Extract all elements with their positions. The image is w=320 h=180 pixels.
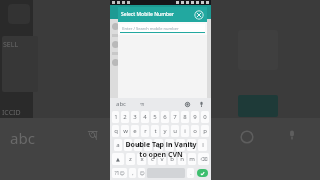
button[interactable]: j [176,139,185,151]
button[interactable]: x [137,153,146,165]
button[interactable]: g [154,139,163,151]
staticText: Enter / Search mobile number [122,26,179,31]
staticText: o [193,127,197,135]
staticText: i [184,127,186,135]
button[interactable]: a [114,139,122,151]
staticText: k [190,141,194,149]
button[interactable]: 6 [161,111,169,123]
button[interactable]: Enter / Search mobile number [120,24,205,33]
button[interactable]: l [198,139,207,151]
button[interactable]: s [124,139,132,151]
staticText: Select Mobile Number [121,11,174,18]
button[interactable]: 2 [121,111,129,123]
button[interactable]: h [165,139,174,151]
staticText: to open CVN [139,150,183,160]
staticText: c [151,155,154,163]
staticText: j [180,141,182,149]
staticText: ICCID [2,108,21,118]
button[interactable]: Settings [184,101,191,108]
staticText: 5 [153,113,157,121]
staticText: SELL [3,40,19,50]
button[interactable]: k [187,139,196,151]
staticText: f [147,141,150,149]
button[interactable]: 7 [171,111,179,123]
button[interactable]: Emoji [138,168,145,178]
button[interactable]: Symbols [112,168,127,178]
button[interactable]: 9 [191,111,199,123]
staticText: r [144,127,147,135]
staticText: 7 [173,113,177,121]
button[interactable]: i [181,125,189,137]
button[interactable]: 3 [131,111,139,123]
staticText: x [140,155,144,163]
staticText: w [123,127,128,135]
staticText: u [173,127,177,135]
staticText: 6 [163,113,167,121]
button[interactable]: Enter [197,169,208,177]
staticText: ☺ [139,170,145,176]
staticText: 2 [123,113,127,121]
staticText: 0 [203,113,207,121]
button[interactable]: অ [140,101,144,107]
staticText: ?1☺ [114,170,125,177]
staticText: v [160,155,164,163]
staticText: abc [10,128,35,148]
staticText: n [180,155,184,163]
staticText: d [136,141,140,149]
staticText: 3 [133,113,137,121]
button[interactable]: f [144,139,152,151]
staticText: h [168,141,172,149]
staticText: ▲ [116,156,120,162]
button[interactable]: 5 [151,111,159,123]
button[interactable]: c [148,153,156,165]
button[interactable]: y [161,125,169,137]
staticText: z [129,155,132,163]
staticText: p [203,127,207,135]
button[interactable]: t [151,125,159,137]
button[interactable]: v [158,153,166,165]
button[interactable]: 1 [112,111,119,123]
button[interactable]: 8 [181,111,189,123]
button[interactable]: 4 [141,111,149,123]
staticText: 4 [143,113,147,121]
button[interactable]: q [112,125,119,137]
button[interactable]: m [188,153,196,165]
staticText: a [116,141,120,149]
button[interactable]: r [141,125,149,137]
staticText: s [127,141,130,149]
button[interactable]: e [131,125,139,137]
staticText: q [114,127,118,135]
button[interactable]: u [171,125,179,137]
staticText: abc [116,100,126,108]
staticText: অ [88,128,98,143]
staticText: Double Tap in Vanity [125,140,197,150]
button[interactable]: p [201,125,209,137]
button[interactable]: Voice input [198,101,205,108]
staticText: e [133,127,137,135]
button[interactable]: o [191,125,199,137]
button[interactable]: w [121,125,129,137]
staticText: g [157,141,161,149]
button[interactable]: n [178,153,186,165]
staticText: t [154,127,157,135]
button[interactable]: z [126,153,135,165]
staticText: l [202,141,204,149]
button[interactable]: b [168,153,176,165]
staticText: , [132,170,134,177]
button[interactable]: Close [194,10,204,20]
button[interactable]: 0 [201,111,209,123]
staticText: 1 [114,113,118,121]
staticText: . [190,170,192,177]
button[interactable]: d [134,139,142,151]
button[interactable]: abc [116,100,126,108]
staticText: 8 [183,113,187,121]
button[interactable]: Backspace [198,153,209,165]
button[interactable]: Comma [129,168,136,178]
button[interactable]: Shift [112,153,124,165]
staticText: ⌫ [200,156,208,162]
button[interactable]: Period [187,168,194,178]
staticText: y [163,127,167,135]
staticText: অ [140,101,144,107]
staticText: m [189,155,195,163]
